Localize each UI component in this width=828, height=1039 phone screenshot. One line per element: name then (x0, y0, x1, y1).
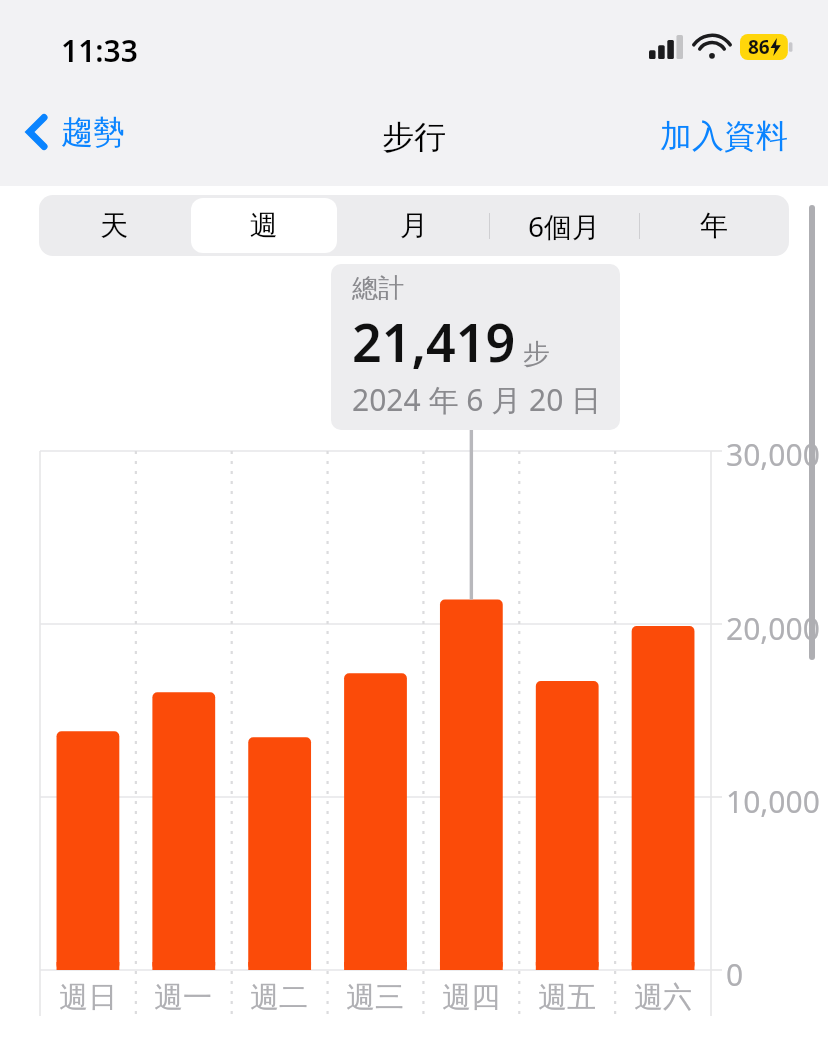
staticText: 週日 (59, 979, 117, 1016)
staticText: 年 (700, 208, 728, 243)
staticText: 21,419 (352, 306, 516, 377)
staticText: 2024 年 6 月 20 日 (352, 379, 602, 420)
staticText: 月 (400, 208, 428, 243)
button[interactable]: 年 (639, 195, 789, 256)
staticText: 20,000 (726, 608, 820, 649)
staticText: 週 (250, 208, 278, 243)
staticText: 步行 (382, 117, 446, 157)
button[interactable]: 6個月 (489, 195, 639, 256)
staticText: 週六 (634, 979, 692, 1016)
button[interactable]: 週 (189, 195, 339, 256)
staticText: 10,000 (726, 781, 820, 822)
staticText: 86 (748, 34, 770, 60)
staticText: 週一 (154, 979, 212, 1016)
staticText: 加入資料 (660, 116, 788, 156)
staticText: 30,000 (726, 434, 820, 475)
button[interactable]: 趨勢 (22, 108, 129, 156)
staticText: 週二 (250, 979, 308, 1016)
staticText: 11:33 (61, 30, 138, 71)
staticText: 步 (523, 337, 550, 371)
staticText: 總計 (352, 272, 404, 305)
staticText: 0 (726, 954, 744, 995)
staticText: 週三 (346, 979, 404, 1016)
staticText: 週五 (538, 979, 596, 1016)
button[interactable]: 加入資料 (656, 112, 792, 160)
staticText: 趨勢 (61, 112, 125, 152)
staticText: 週四 (442, 979, 500, 1016)
button[interactable]: 月 (339, 195, 489, 256)
staticText: 天 (100, 208, 128, 243)
staticText: 6個月 (528, 207, 601, 245)
button[interactable]: 天 (39, 195, 189, 256)
